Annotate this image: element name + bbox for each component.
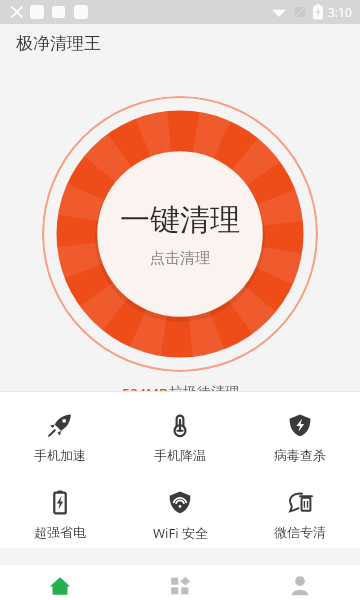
staticText: 3:10 [328,4,352,20]
staticText: 手机加速 [34,447,86,463]
button[interactable]: 手机加速 [0,406,120,469]
staticText: 超强省电 [34,524,86,540]
button[interactable]: 我的 [240,565,360,600]
staticText: WiFi 安全 [153,524,208,542]
button[interactable]: WiFi 安全 [120,483,240,548]
button[interactable]: 超强省电 [0,483,120,546]
button[interactable]: 病毒查杀 [240,406,360,469]
button[interactable]: 微信专清 [240,483,360,546]
staticText: 微信专清 [274,524,326,540]
button[interactable]: 热门工具 [120,565,240,600]
button[interactable]: 手机降温 [120,406,240,469]
button[interactable]: 一键清理 [42,96,318,372]
staticText: 病毒查杀 [274,447,326,463]
button[interactable]: 主页 [0,565,120,600]
staticText: 极净清理王 [16,33,101,54]
staticText: 一键清理 [120,201,240,239]
staticText: 点击清理 [150,249,210,268]
staticText: 垃圾待清理 [169,384,239,391]
staticText: 手机降温 [154,447,206,463]
staticText: 534MB [122,384,169,391]
